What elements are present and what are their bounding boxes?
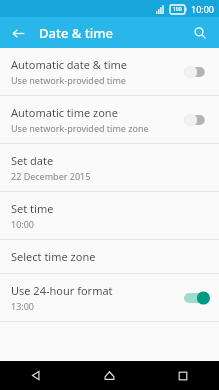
staticText: Automatic time zone: [11, 105, 118, 120]
button[interactable]: Recents: [146, 361, 219, 390]
staticText: 22 December 2015: [11, 170, 91, 182]
staticText: 10:00: [191, 3, 215, 15]
button[interactable]: Automatic date & time: [0, 48, 219, 95]
staticText: Use network-provided time zone: [11, 122, 149, 134]
button[interactable]: Set time: [0, 192, 219, 239]
staticText: Set date: [11, 153, 54, 168]
staticText: Use network-provided time: [11, 74, 126, 86]
button[interactable]: Search: [189, 22, 211, 44]
staticText: 13:00: [11, 300, 35, 312]
button[interactable]: Automatic time zone: [0, 96, 219, 143]
staticText: Date & time: [39, 24, 113, 42]
button[interactable]: Home: [73, 361, 146, 390]
button[interactable]: Back: [7, 22, 29, 44]
button[interactable]: Use 24-hour format: [0, 274, 219, 321]
button[interactable]: Select time zone: [0, 240, 219, 273]
staticText: Set time: [11, 201, 54, 216]
button[interactable]: Set date: [0, 144, 219, 191]
staticText: 100: [173, 6, 182, 13]
staticText: Automatic date & time: [11, 57, 128, 72]
staticText: Select time zone: [11, 249, 96, 264]
staticText: 10:00: [11, 218, 35, 230]
button[interactable]: Back: [0, 361, 73, 390]
staticText: Use 24-hour format: [11, 283, 113, 298]
